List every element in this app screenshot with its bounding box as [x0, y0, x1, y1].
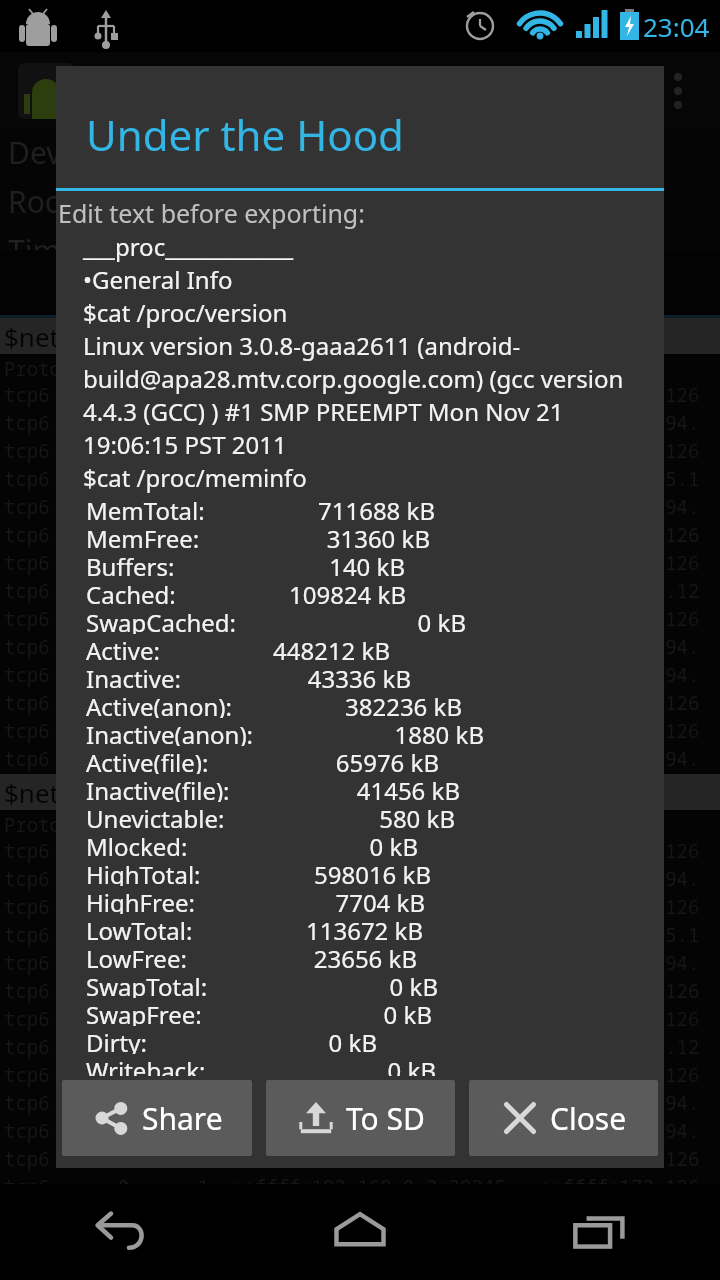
staticText: tcp6 0 1 ::ffff:192.168.0.2:39245 ::ffff…: [4, 550, 700, 576]
staticText: tcp6 0 1 ::ffff:192.168.0.2:39245 ::ffff…: [4, 922, 700, 948]
button[interactable]: More options: [658, 71, 698, 111]
staticText: 19:06:15 PST 2011: [58, 428, 287, 461]
staticText: 140 kB: [175, 550, 405, 578]
staticText: tcp6 0 1 ::ffff:192.168.0.2:39245 ::ffff…: [4, 1090, 700, 1116]
button[interactable]: Close: [469, 1080, 658, 1156]
staticText: tcp6 0 1 ::ffff:192.168.0.2:39245 ::ffff…: [4, 634, 700, 660]
staticText: $netstat: [4, 319, 105, 354]
staticText: SwapCached:: [86, 606, 236, 634]
staticText: Under the Hood: [86, 106, 404, 163]
staticText: tcp6 0 1 ::ffff:192.168.0.2:39245 ::ffff…: [4, 1034, 700, 1060]
staticText: Device:: [8, 132, 109, 173]
staticText: •General Info: [58, 263, 233, 296]
staticText: tcp6 0 1 ::ffff:192.168.0.2:39245 ::ffff…: [4, 1118, 700, 1144]
staticText: tcp6 0 1 ::ffff:192.168.0.2:39245 ::ffff…: [4, 382, 700, 408]
staticText: 0 kB: [206, 1054, 436, 1076]
staticText: Proto Recv Send Local Address Foreign Ad…: [4, 812, 643, 838]
staticText: 448212 kB: [160, 634, 390, 662]
staticText: Dirty:: [86, 1026, 147, 1054]
staticText: HighFree:: [86, 886, 195, 914]
staticText: $netstat: [4, 775, 105, 810]
button[interactable]: App icon: [18, 63, 74, 119]
button[interactable]: [240, 250, 480, 318]
staticText: Unevictable:: [86, 802, 225, 830]
staticText: 65976 kB: [209, 746, 439, 774]
staticText: LowFree:: [86, 942, 187, 970]
staticText: tcp6 0 1 ::ffff:192.168.0.2:39245 ::ffff…: [4, 410, 700, 436]
button[interactable]: Share: [62, 1080, 252, 1156]
staticText: 0 kB: [236, 606, 466, 634]
staticText: Mlocked:: [86, 830, 188, 858]
staticText: HighTotal:: [86, 858, 201, 886]
staticText: 382236 kB: [232, 690, 462, 718]
staticText: tcp6 0 1 ::ffff:192.168.0.2:39245 ::ffff…: [4, 1146, 700, 1172]
staticText: tcp6 0 1 ::ffff:192.168.0.2:39245 ::ffff…: [4, 494, 700, 520]
button[interactable]: Back: [0, 1184, 240, 1280]
staticText: Inactive:: [86, 662, 181, 690]
staticText: 0 kB: [202, 998, 432, 1026]
staticText: Edit text before exporting:: [58, 196, 365, 230]
staticText: 41456 kB: [230, 774, 460, 802]
staticText: Proto Recv Send Local Address Foreign Ad…: [4, 356, 643, 382]
staticText: tcp6 0 1 ::ffff:192.168.0.2:39245 ::ffff…: [4, 746, 700, 772]
staticText: $cat /proc/meminfo: [58, 461, 307, 494]
staticText: Inactive(anon):: [86, 718, 254, 746]
staticText: To SD: [346, 1098, 425, 1139]
staticText: tcp6 0 1 ::ffff:192.168.0.2:39245 ::ffff…: [4, 866, 700, 892]
staticText: FG: [108, 284, 134, 311]
staticText: tcp6 0 1 ::ffff:192.168.0.2:39245 ::ffff…: [4, 662, 700, 688]
staticText: tcp6 0 1 ::ffff:192.168.0.2:39245 ::ffff…: [4, 578, 700, 604]
staticText: 598016 kB: [201, 858, 431, 886]
staticText: tcp6 0 1 ::ffff:192.168.0.2:39245 ::ffff…: [4, 466, 700, 492]
staticText: 0 kB: [188, 830, 418, 858]
staticText: 580 kB: [225, 802, 455, 830]
button[interactable]: NET: [0, 250, 240, 318]
staticText: Writeback:: [86, 1054, 206, 1076]
staticText: SwapTotal:: [86, 970, 208, 998]
staticText: build@apa28.mtv.corp.google.com) (gcc ve…: [58, 362, 624, 395]
staticText: tcp6 0 1 ::ffff:192.168.0.2:39245 ::ffff…: [4, 718, 700, 744]
staticText: ___proc____________: [58, 230, 294, 263]
button[interactable]: CACHE: [480, 250, 720, 318]
staticText: Share: [142, 1098, 223, 1139]
staticText: Close: [550, 1098, 627, 1139]
staticText: tcp6 0 1 ::ffff:192.168.0.2:39245 ::ffff…: [4, 690, 700, 716]
staticText: Active(anon):: [86, 690, 232, 718]
staticText: Root:: [8, 181, 82, 222]
staticText: Time:: [8, 230, 86, 250]
staticText: 4.4.3 (GCC) ) #1 SMP PREEMPT Mon Nov 21: [58, 395, 564, 428]
staticText: 1880 kB: [254, 718, 484, 746]
button[interactable]: Recent apps: [480, 1184, 720, 1280]
staticText: 0 kB: [147, 1026, 377, 1054]
staticText: 43336 kB: [181, 662, 411, 690]
staticText: MemFree:: [86, 522, 200, 550]
staticText: 23656 kB: [187, 942, 417, 970]
staticText: tcp6 0 1 ::ffff:192.168.0.2:39245 ::ffff…: [4, 438, 700, 464]
staticText: tcp6 0 1 ::ffff:192.168.0.2:39245 ::ffff…: [4, 950, 700, 976]
staticText: 113672 kB: [193, 914, 423, 942]
staticText: tcp6 0 1 ::ffff:192.168.0.2:39245 ::ffff…: [4, 1006, 700, 1032]
staticText: tcp6 0 1 ::ffff:192.168.0.2:39245 ::ffff…: [4, 1062, 700, 1088]
staticText: Active(file):: [86, 746, 209, 774]
staticText: 711688 kB: [205, 494, 435, 522]
staticText: Buffers:: [86, 550, 175, 578]
staticText: tcp6 0 1 ::ffff:192.168.0.2:39245 ::ffff…: [4, 894, 700, 920]
staticText: 109824 kB: [176, 578, 406, 606]
staticText: 23:04: [643, 9, 710, 44]
staticText: tcp6 0 1 ::ffff:192.168.0.2:39245 ::ffff…: [4, 1202, 700, 1228]
staticText: $cat /proc/version: [58, 296, 288, 329]
staticText: Cached:: [86, 578, 176, 606]
staticText: tcp6 0 1 ::ffff:192.168.0.2:39245 ::ffff…: [4, 1174, 700, 1200]
staticText: 7704 kB: [195, 886, 425, 914]
staticText: Linux version 3.0.8-gaaa2611 (android-: [58, 329, 521, 362]
button[interactable]: Home: [240, 1184, 480, 1280]
staticText: SwapFree:: [86, 998, 202, 1026]
staticText: MemTotal:: [86, 494, 205, 522]
button[interactable]: To SD: [266, 1080, 455, 1156]
staticText: NET: [101, 257, 140, 284]
staticText: 31360 kB: [200, 522, 430, 550]
staticText: tcp6 0 1 ::ffff:192.168.0.2:39245 ::ffff…: [4, 606, 700, 632]
staticText: LowTotal:: [86, 914, 193, 942]
staticText: 0 kB: [208, 970, 438, 998]
